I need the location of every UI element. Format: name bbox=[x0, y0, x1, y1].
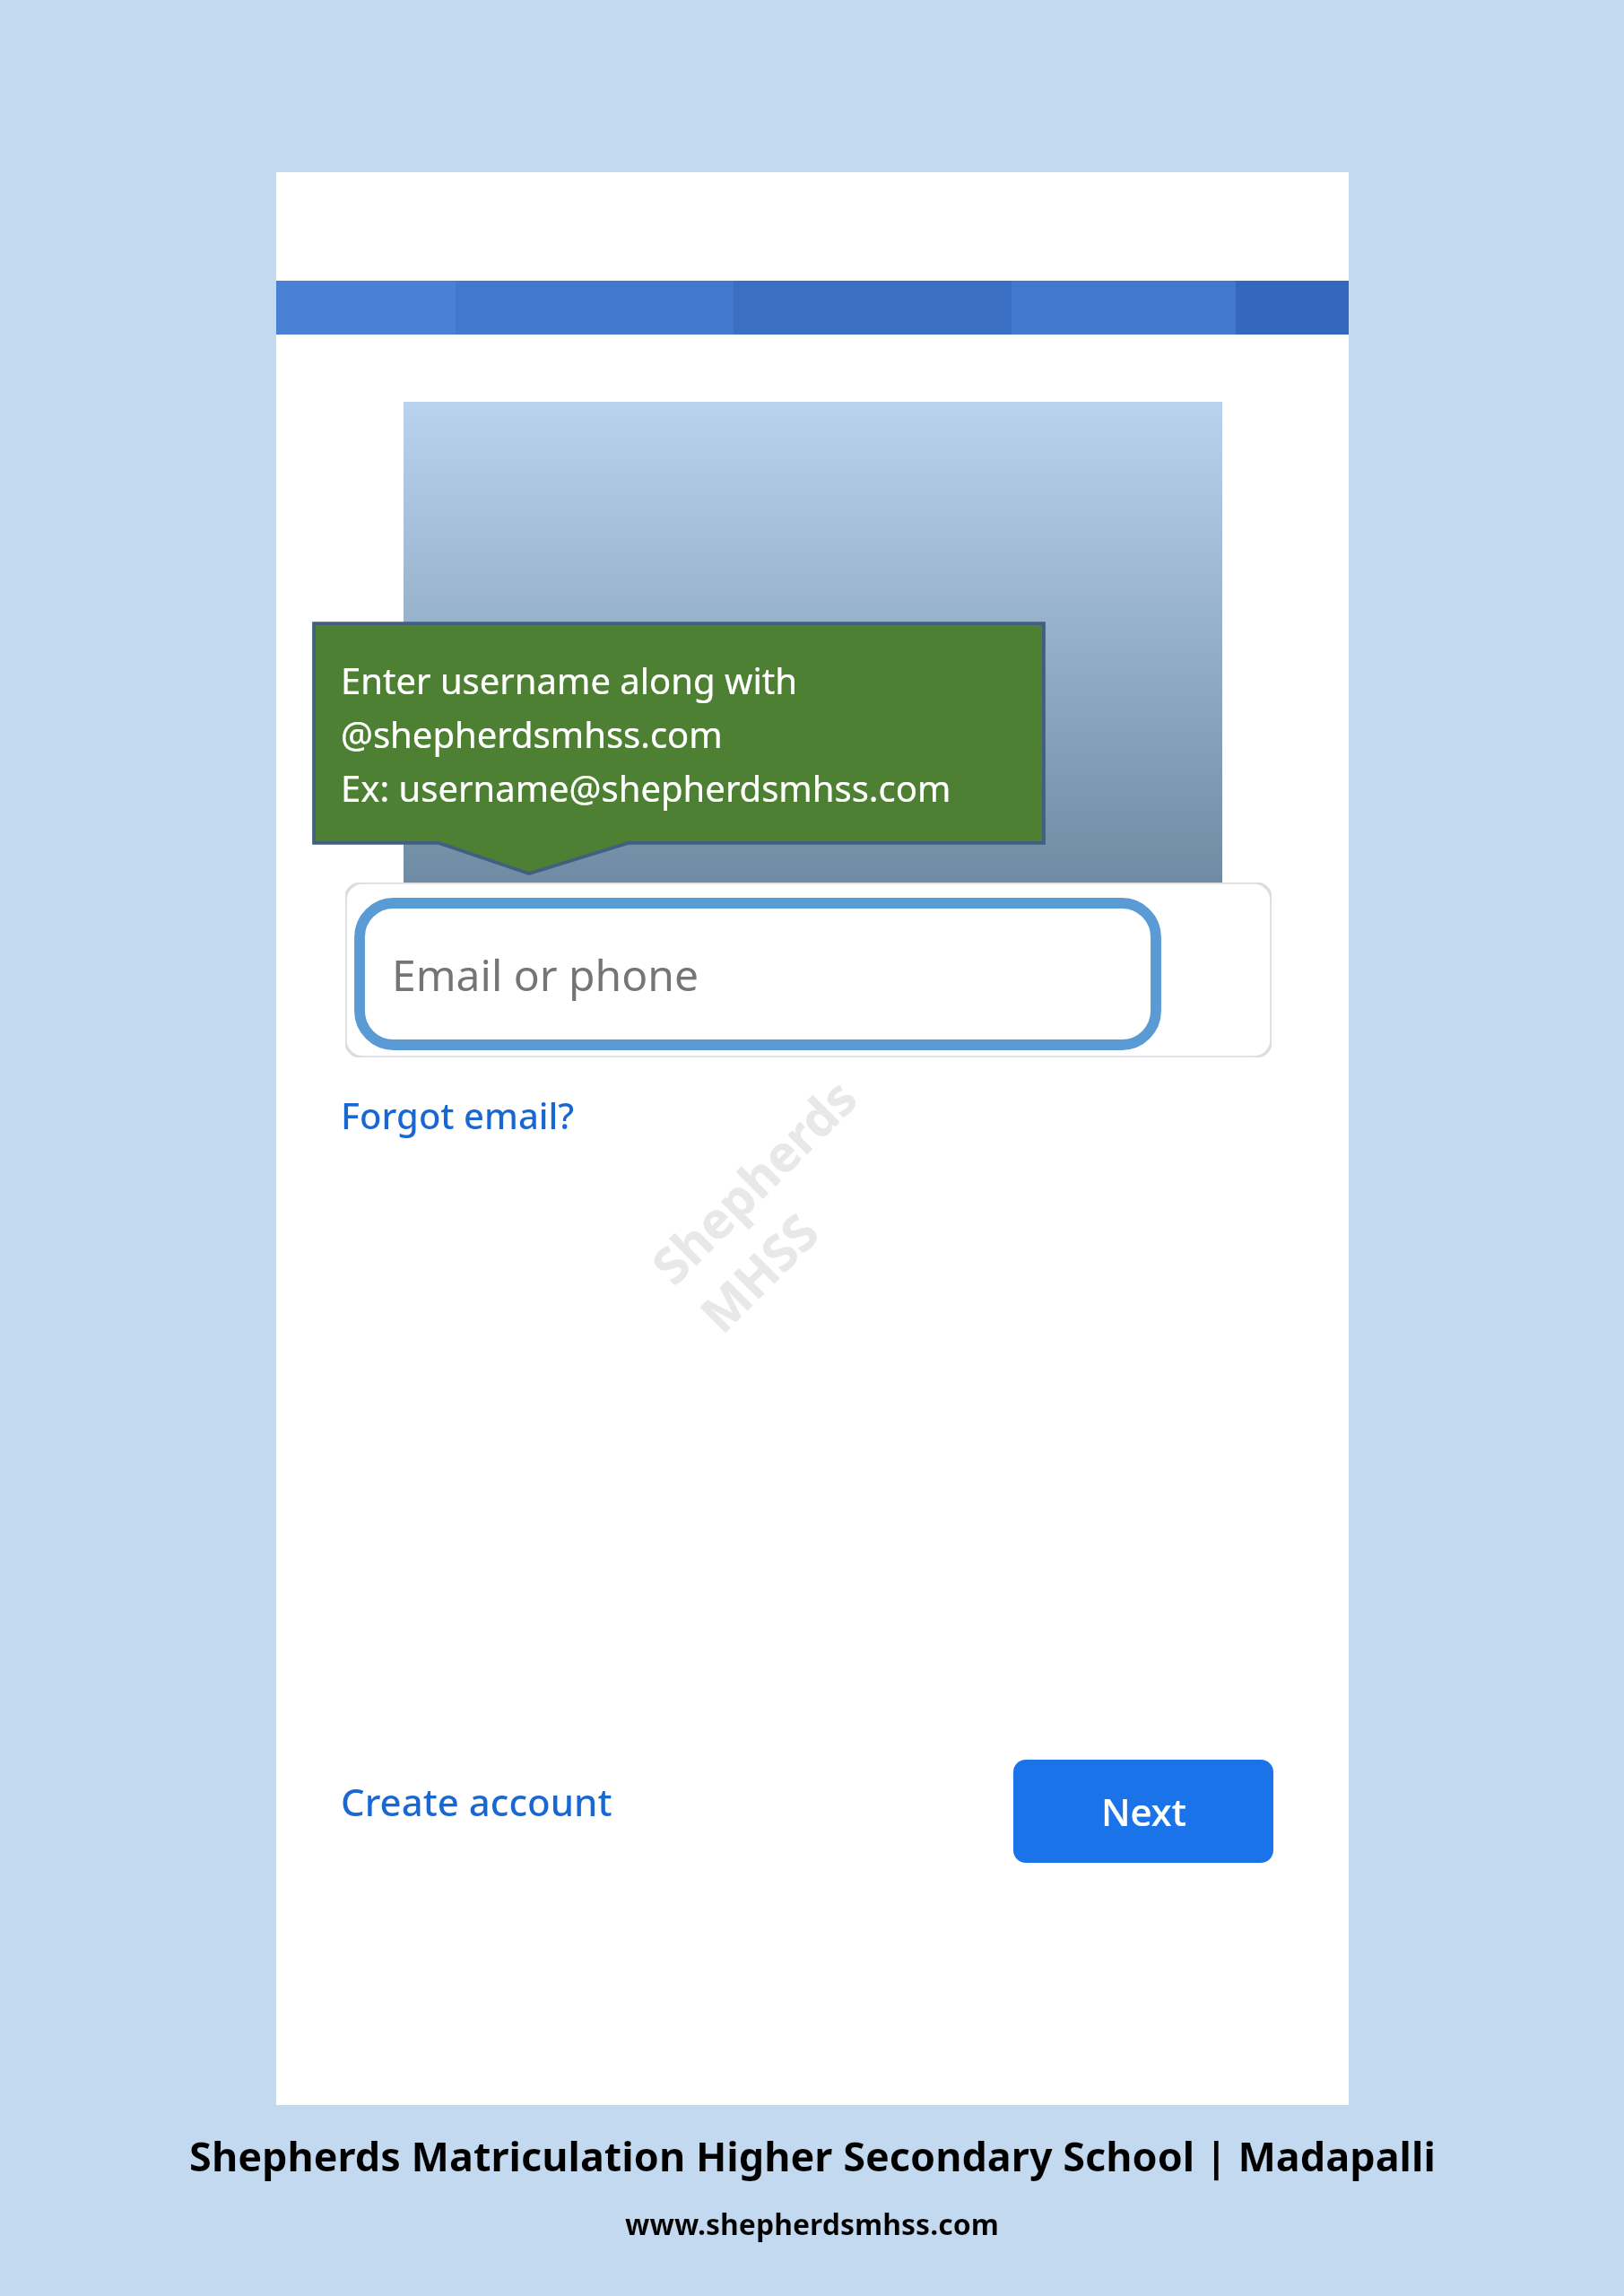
staticText: Shepherds Matriculation Higher Secondary… bbox=[189, 2128, 1436, 2183]
staticText: Create account bbox=[341, 1776, 612, 1827]
staticText: Forgot email? bbox=[341, 1091, 575, 1139]
staticText: Shepherds MHSS bbox=[636, 977, 1005, 1346]
button[interactable]: Email or phone bbox=[360, 903, 1156, 1045]
staticText: Enter username along with @shepherdsmhss… bbox=[341, 656, 951, 813]
staticText: www.shepherdsmhss.com bbox=[625, 2205, 999, 2244]
staticText: Next bbox=[1101, 1786, 1186, 1837]
button[interactable]: Next bbox=[1013, 1760, 1273, 1863]
button[interactable]: Create account bbox=[341, 1765, 664, 1837]
button[interactable]: Forgot email? bbox=[341, 1081, 628, 1148]
staticText: Email or phone bbox=[392, 945, 699, 1004]
